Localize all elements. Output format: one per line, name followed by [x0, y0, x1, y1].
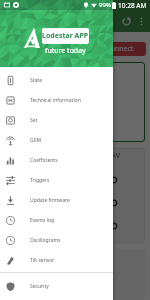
staticText: kV — [112, 151, 120, 161]
button[interactable]: Refresh — [118, 13, 134, 29]
staticText: 10:28 AM — [118, 1, 147, 10]
button[interactable]: Update firmware — [0, 190, 113, 210]
staticText: 99% — [99, 1, 111, 9]
staticText: future today — [45, 46, 86, 56]
button[interactable]: Set — [0, 110, 113, 130]
button[interactable]: Security — [0, 276, 113, 296]
button[interactable]: State — [0, 70, 113, 90]
staticText: Triggers — [30, 177, 50, 184]
staticText: Disconnect — [97, 44, 134, 54]
staticText: Tilt sensor — [30, 257, 55, 264]
button[interactable]: Triggers — [0, 170, 113, 190]
staticText: Coefficients — [30, 157, 58, 164]
staticText: State — [30, 77, 42, 84]
staticText: Set — [30, 117, 38, 124]
button[interactable]: Oscillograms — [0, 230, 113, 250]
staticText: Technical information — [30, 97, 81, 104]
staticText: Security — [30, 283, 49, 290]
button[interactable]: GSM — [0, 130, 113, 150]
button[interactable]: More options — [134, 14, 148, 28]
staticText: GSM — [30, 137, 41, 144]
staticText: Oscillograms — [30, 237, 61, 244]
button[interactable]: Disconnect — [84, 42, 146, 56]
button[interactable]: Technical information — [0, 90, 113, 110]
staticText: Update firmware — [30, 197, 70, 204]
staticText: Events log — [30, 217, 55, 224]
button[interactable]: Events log — [0, 210, 113, 230]
button[interactable]: Coefficients — [0, 150, 113, 170]
button[interactable]: Tilt sensor — [0, 250, 113, 270]
staticText: Lodestar APP — [42, 31, 89, 41]
